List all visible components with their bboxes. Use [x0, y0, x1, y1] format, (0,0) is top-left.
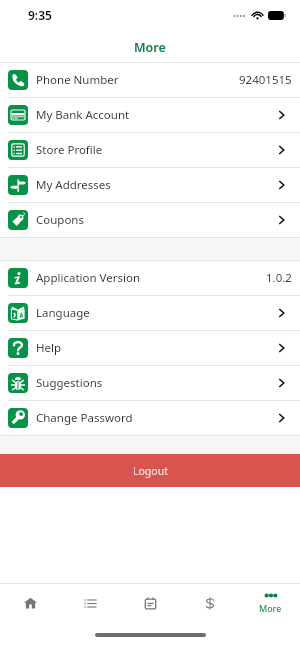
staticText: Change Password [36, 410, 133, 426]
staticText: 92401515 [239, 72, 292, 88]
staticText: Phone Number [36, 72, 119, 88]
button[interactable]: Language [0, 296, 300, 330]
staticText: My Addresses [36, 177, 111, 193]
staticText: Coupons [36, 212, 84, 228]
button[interactable]: Store Profile [0, 133, 300, 167]
button[interactable]: Suggestions [0, 366, 300, 400]
staticText: Application Version [36, 270, 141, 286]
staticText: More [134, 39, 166, 56]
staticText: More [259, 602, 282, 614]
button[interactable]: Application Version [0, 261, 300, 295]
staticText: 1.0.2 [266, 270, 292, 286]
button[interactable]: Home [0, 584, 60, 622]
button[interactable]: More [240, 584, 300, 622]
button[interactable]: Payments [180, 584, 240, 622]
button[interactable]: Orders [60, 584, 120, 622]
staticText: Language [36, 305, 90, 321]
button[interactable]: Help [0, 331, 300, 365]
staticText: Logout [133, 464, 168, 478]
button[interactable]: Coupons [0, 203, 300, 237]
button[interactable]: My Bank Account [0, 98, 300, 132]
staticText: My Bank Account [36, 107, 130, 123]
staticText: Help [36, 340, 62, 356]
button[interactable]: Phone Number [0, 63, 300, 97]
staticText: Suggestions [36, 375, 103, 391]
staticText: Store Profile [36, 142, 103, 158]
button[interactable]: Change Password [0, 401, 300, 435]
button[interactable]: My Addresses [0, 168, 300, 202]
staticText: 9:35 [28, 7, 52, 23]
button[interactable]: Logout [0, 454, 300, 487]
button[interactable]: Calendar [120, 584, 180, 622]
